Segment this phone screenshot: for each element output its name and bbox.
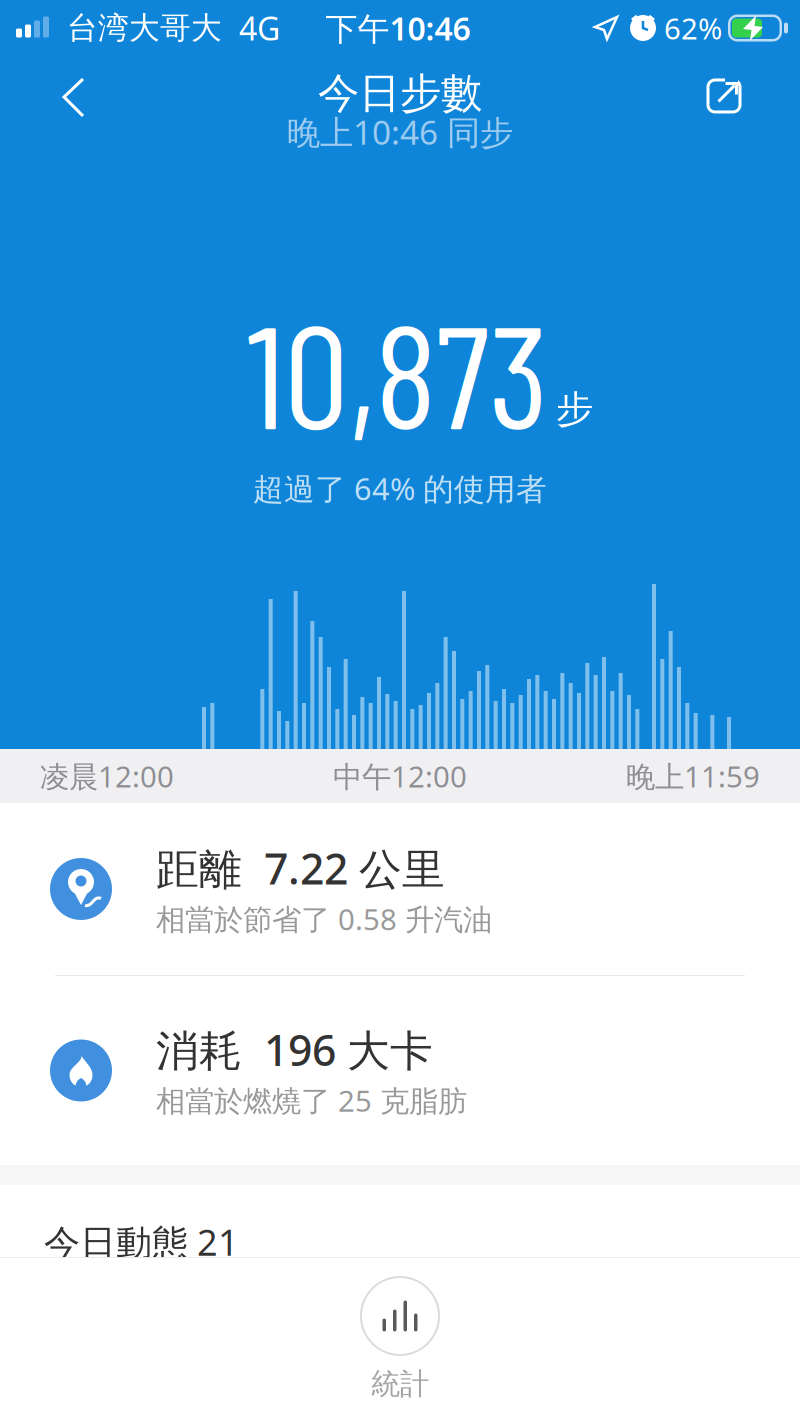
staticText: 消耗 196 大卡 bbox=[156, 1021, 433, 1078]
staticText: 晚上10:46 同步 bbox=[287, 110, 513, 154]
staticText: 台湾大哥大 bbox=[67, 9, 222, 47]
staticText: 今日步數 bbox=[318, 68, 482, 119]
staticText: 晚上11:59 bbox=[626, 756, 760, 795]
staticText: 下午10:46 bbox=[325, 7, 470, 49]
staticText: 今日動態 21 bbox=[44, 1218, 239, 1266]
staticText: 相當於燃燒了 25 克脂肪 bbox=[156, 1081, 467, 1120]
staticText: 超過了 64% 的使用者 bbox=[253, 468, 547, 509]
staticText: 相當於節省了 0.58 升汽油 bbox=[156, 899, 492, 938]
staticText: 62% bbox=[664, 8, 722, 47]
button[interactable]: 分享 bbox=[674, 46, 800, 130]
staticText: 4G bbox=[239, 7, 280, 49]
staticText: 10,873 bbox=[247, 284, 548, 458]
staticText: 凌晨12:00 bbox=[40, 756, 174, 795]
button[interactable]: 統計 bbox=[360, 1258, 440, 1402]
staticText: 統計 bbox=[371, 1366, 429, 1402]
staticText: 距離 7.22 公里 bbox=[156, 840, 445, 896]
button[interactable]: 返回 bbox=[0, 46, 116, 132]
staticText: 中午12:00 bbox=[333, 756, 467, 795]
staticText: 步 bbox=[556, 386, 593, 432]
